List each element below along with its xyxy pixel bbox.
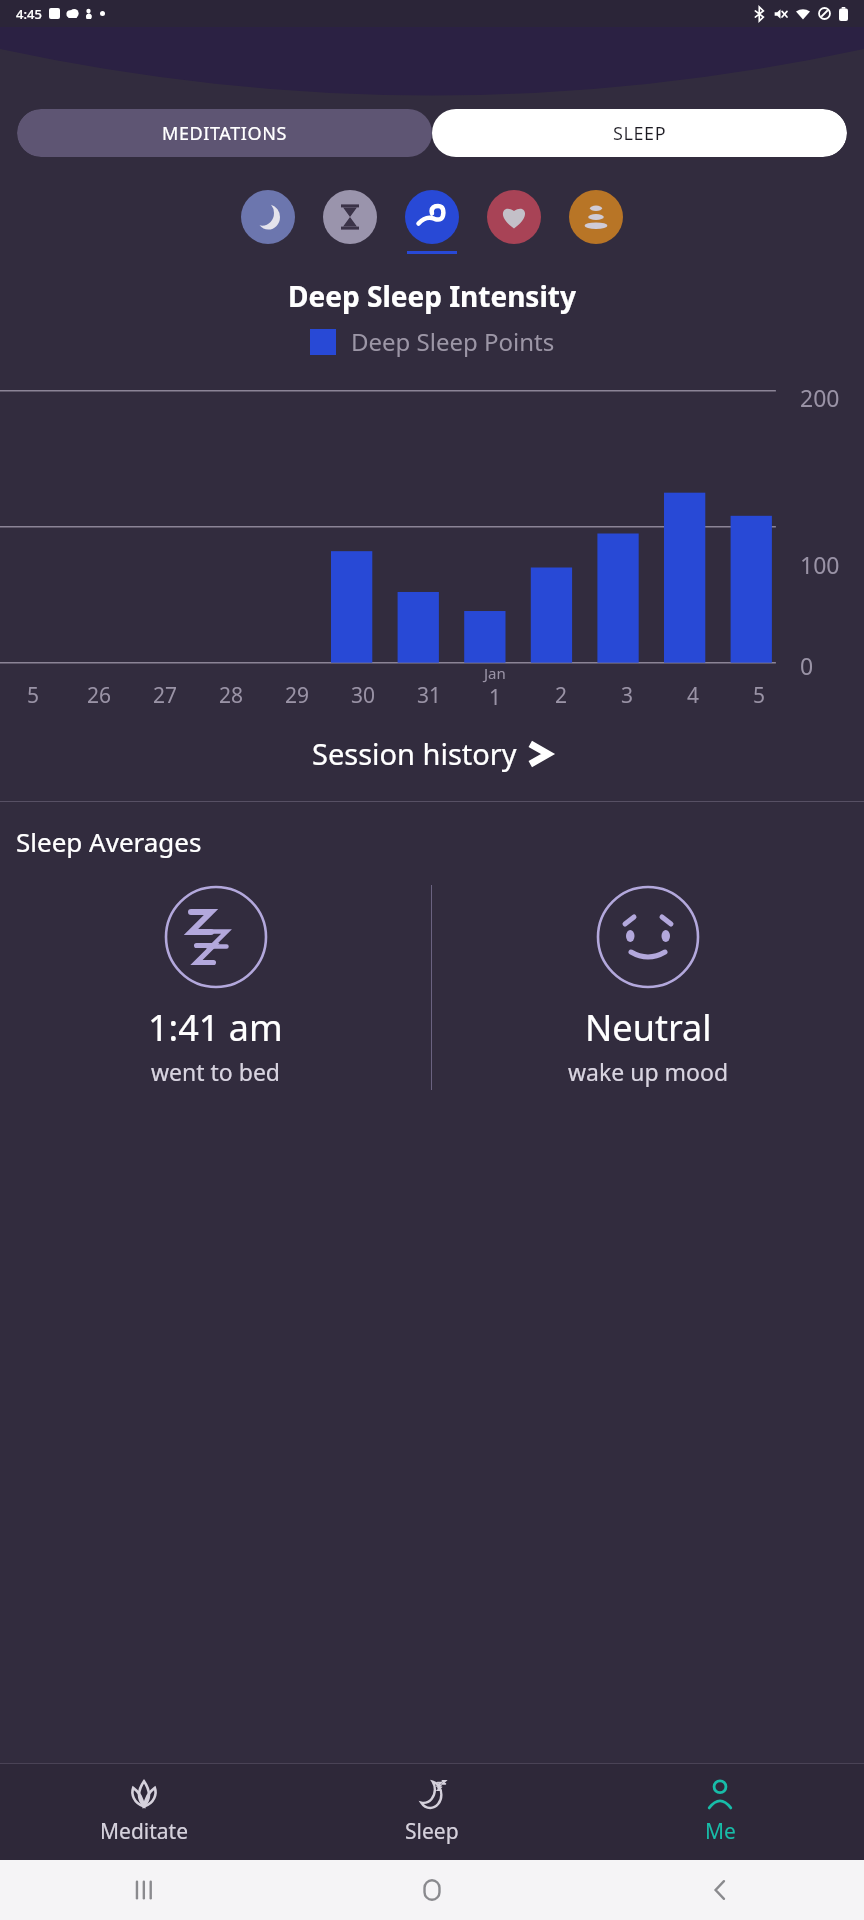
button[interactable]: Session history bbox=[0, 734, 864, 773]
button[interactable]: Meditate bbox=[0, 1763, 288, 1860]
button[interactable]: Stones bbox=[569, 190, 623, 254]
button[interactable]: Moon bbox=[241, 190, 295, 254]
staticText: Deep Sleep Intensity bbox=[0, 277, 864, 315]
staticText: Sleep Averages bbox=[16, 824, 202, 859]
staticText: Meditate bbox=[100, 1817, 189, 1846]
button[interactable]: Neutral bbox=[432, 885, 864, 1087]
staticText: 0 bbox=[800, 650, 814, 681]
staticText: Sleep bbox=[405, 1817, 459, 1846]
button[interactable]: Sleep bbox=[288, 1763, 576, 1860]
staticText: 1:41 am bbox=[148, 1003, 283, 1052]
staticText: Deep Sleep Points bbox=[351, 325, 555, 358]
staticText: 2 bbox=[555, 681, 568, 710]
staticText: 100 bbox=[800, 549, 840, 580]
staticText: 29 bbox=[285, 681, 310, 710]
staticText: 30 bbox=[351, 681, 376, 710]
staticText: 31 bbox=[417, 681, 442, 710]
button[interactable]: Recent apps bbox=[0, 1860, 288, 1920]
staticText: 5 bbox=[753, 681, 766, 710]
button[interactable]: 1:41 am bbox=[0, 885, 431, 1087]
button[interactable]: SLEEP bbox=[432, 109, 847, 157]
button[interactable]: Me bbox=[576, 1763, 864, 1860]
staticText: 28 bbox=[219, 681, 244, 710]
staticText: SLEEP bbox=[613, 121, 667, 146]
staticText: Me bbox=[705, 1817, 736, 1846]
staticText: wake up mood bbox=[568, 1056, 729, 1087]
button[interactable]: Waves bbox=[405, 190, 459, 254]
staticText: 27 bbox=[153, 681, 178, 710]
staticText: 1 bbox=[489, 683, 502, 712]
staticText: Jan bbox=[484, 663, 506, 683]
button[interactable]: Home bbox=[288, 1860, 576, 1920]
staticText: Session history bbox=[312, 734, 517, 773]
button[interactable]: Hourglass bbox=[323, 190, 377, 254]
staticText: MEDITATIONS bbox=[162, 121, 287, 146]
button[interactable]: Heart bbox=[487, 190, 541, 254]
staticText: 4:45 bbox=[16, 5, 42, 23]
staticText: 3 bbox=[621, 681, 634, 710]
staticText: Neutral bbox=[585, 1003, 712, 1052]
staticText: 5 bbox=[27, 681, 40, 710]
staticText: 4 bbox=[687, 681, 700, 710]
button[interactable]: Back bbox=[576, 1860, 864, 1920]
staticText: 26 bbox=[87, 681, 112, 710]
button[interactable]: MEDITATIONS bbox=[17, 109, 432, 157]
staticText: went to bed bbox=[151, 1056, 281, 1087]
staticText: 200 bbox=[800, 382, 840, 413]
